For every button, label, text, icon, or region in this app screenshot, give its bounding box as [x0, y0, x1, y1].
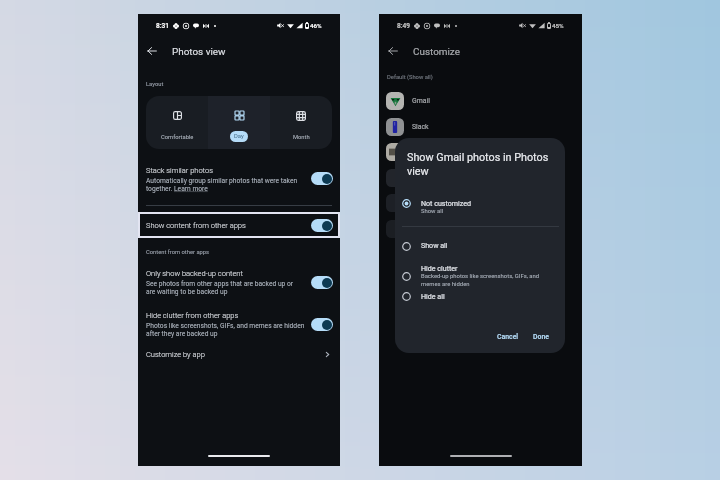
- staticText: Photos view: [172, 46, 226, 58]
- button[interactable]: Learn more: [174, 185, 208, 193]
- staticText: Photos like screenshots, GIFs, and memes…: [146, 322, 305, 330]
- staticText: Keep: [412, 174, 428, 182]
- button[interactable]: [402, 238, 558, 252]
- staticText: Stack similar photos: [146, 166, 213, 175]
- staticText: after they are backed up: [146, 330, 218, 338]
- staticText: Layout: [146, 81, 164, 88]
- staticText: together.: [146, 185, 174, 193]
- button[interactable]: Files: [379, 218, 582, 240]
- button[interactable]: Navigate up: [141, 40, 163, 62]
- staticText: Show content from other apps: [146, 221, 311, 230]
- button[interactable]: Keep: [379, 167, 582, 189]
- staticText: See photos from other apps that are back…: [146, 280, 294, 288]
- button[interactable]: Stack similar photos: [146, 166, 306, 193]
- staticText: Hide clutter: [421, 264, 458, 272]
- button[interactable]: Customize by app: [138, 345, 340, 364]
- button[interactable]: Comfortable: [146, 96, 208, 149]
- staticText: Chrome: [412, 199, 437, 207]
- staticText: Hide clutter from other apps: [146, 311, 239, 320]
- button[interactable]: Drive: [379, 141, 582, 163]
- button[interactable]: [402, 261, 558, 287]
- staticText: Month: [293, 134, 310, 141]
- button[interactable]: Day: [208, 96, 270, 149]
- button[interactable]: Done: [528, 328, 554, 346]
- button[interactable]: Toggle setting: [311, 172, 333, 185]
- staticText: Only show backed-up content: [146, 269, 243, 278]
- button[interactable]: Gmail: [379, 90, 582, 112]
- staticText: Gmail: [412, 97, 430, 105]
- button[interactable]: [402, 196, 558, 222]
- button[interactable]: Cancel: [492, 328, 524, 346]
- staticText: Done: [533, 333, 549, 341]
- button[interactable]: [402, 289, 558, 303]
- staticText: 8:31: [156, 22, 169, 30]
- button[interactable]: Toggle setting: [311, 318, 333, 331]
- button[interactable]: Only show backed-up content: [146, 269, 306, 296]
- staticText: Slack: [412, 123, 429, 131]
- staticText: Hide all: [421, 292, 445, 300]
- staticText: Show all: [421, 208, 444, 215]
- button[interactable]: Toggle setting: [311, 219, 333, 232]
- staticText: Automatically group similar photos that …: [146, 177, 298, 185]
- staticText: Show all: [421, 241, 448, 249]
- staticText: Backed-up photos like screenshots, GIFs,…: [421, 273, 540, 288]
- staticText: Day: [234, 133, 244, 140]
- button[interactable]: Slack: [379, 116, 582, 138]
- button[interactable]: Chrome: [379, 192, 582, 214]
- staticText: Comfortable: [161, 134, 194, 141]
- staticText: 46%: [310, 22, 322, 29]
- button[interactable]: Toggle setting: [311, 276, 333, 289]
- button[interactable]: Navigate up: [382, 40, 404, 62]
- button[interactable]: Hide clutter from other apps: [146, 311, 306, 338]
- button[interactable]: Show content from other apps: [138, 212, 340, 238]
- staticText: Drive: [412, 148, 428, 156]
- button[interactable]: Month: [270, 96, 332, 149]
- staticText: Files: [412, 225, 427, 233]
- staticText: are waiting to be backed up: [146, 288, 228, 296]
- staticText: Customize by app: [146, 350, 324, 359]
- staticText: 8:49: [397, 22, 410, 30]
- staticText: Not customized: [421, 199, 471, 207]
- staticText: 45%: [552, 22, 564, 29]
- staticText: Show Gmail photos in Photos view: [407, 151, 549, 178]
- staticText: Content from other apps: [146, 249, 210, 256]
- staticText: Cancel: [497, 333, 519, 341]
- staticText: Customize: [413, 46, 460, 58]
- staticText: Default (Show all): [387, 74, 433, 81]
